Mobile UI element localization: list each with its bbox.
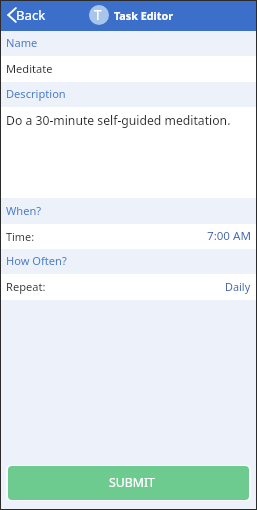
staticText: Daily [225, 279, 251, 294]
staticText: When? [6, 203, 42, 218]
staticText: Description [6, 86, 66, 101]
staticText: Do a 30-minute self-guided meditation. [6, 112, 231, 129]
staticText: Repeat: [6, 279, 46, 294]
staticText: Back [16, 6, 46, 24]
staticText: T [94, 6, 102, 24]
staticText: SUBMIT [109, 474, 155, 491]
staticText: Meditate [6, 61, 53, 76]
staticText: Name [6, 35, 38, 50]
staticText: Task Editor [114, 8, 174, 23]
staticText: 7:00 AM [207, 228, 251, 244]
button[interactable]: SUBMIT [8, 466, 249, 500]
staticText: Time: [6, 229, 35, 244]
staticText: How Often? [6, 253, 67, 268]
button[interactable]: Back [1, 2, 52, 28]
